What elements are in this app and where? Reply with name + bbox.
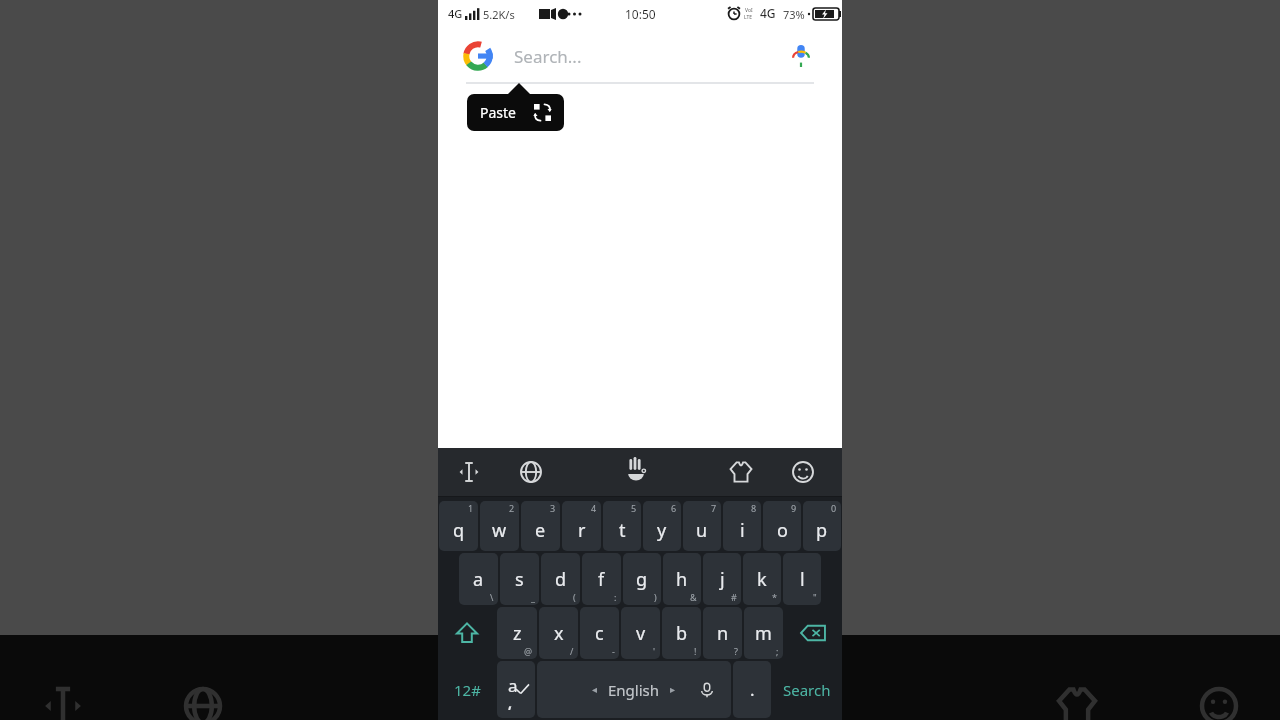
staticText: 3 xyxy=(550,502,556,514)
staticText: . xyxy=(750,678,755,701)
staticText: 1 xyxy=(468,502,474,514)
staticText: h xyxy=(676,567,688,592)
staticText: ! xyxy=(694,645,697,657)
staticText: ) xyxy=(654,591,657,603)
staticText: p xyxy=(816,518,828,543)
staticText: 8 xyxy=(751,502,757,514)
button[interactable]: ◂ xyxy=(537,661,731,718)
button[interactable]: k xyxy=(743,553,781,605)
button[interactable]: Emoji xyxy=(772,448,834,496)
button[interactable]: Voice search xyxy=(781,36,821,76)
staticText: @ xyxy=(524,645,533,657)
button[interactable]: e xyxy=(521,501,560,551)
staticText: : xyxy=(614,591,617,603)
button[interactable]: t xyxy=(603,501,641,551)
button[interactable]: y xyxy=(643,501,681,551)
staticText: y xyxy=(657,518,667,543)
button[interactable]: 12# xyxy=(438,661,496,718)
button[interactable]: c xyxy=(580,607,619,659)
staticText: m xyxy=(755,621,772,646)
button[interactable]: a xyxy=(459,553,498,605)
button[interactable]: Theme xyxy=(710,448,772,496)
staticText: v xyxy=(636,621,646,646)
staticText: 2 xyxy=(509,502,515,514)
staticText: / xyxy=(570,645,574,657)
staticText: ? xyxy=(734,645,738,657)
button[interactable]: q xyxy=(439,501,478,551)
staticText: 5.2K/s xyxy=(483,7,515,22)
staticText: a xyxy=(508,674,518,697)
other: Google xyxy=(464,42,492,70)
button[interactable]: p xyxy=(803,501,841,551)
button[interactable]: d xyxy=(541,553,580,605)
staticText: j xyxy=(720,567,725,592)
button[interactable]: m xyxy=(744,607,783,659)
button[interactable]: Paste xyxy=(467,94,564,131)
staticText: ; xyxy=(776,645,779,657)
staticText: i xyxy=(740,518,745,543)
staticText: 73% xyxy=(783,7,805,22)
button[interactable]: Shift xyxy=(438,607,496,659)
staticText: ' xyxy=(653,645,656,657)
staticText: s xyxy=(515,567,524,592)
button[interactable]: l xyxy=(783,553,821,605)
staticText: & xyxy=(690,591,697,603)
button[interactable]: v xyxy=(621,607,660,659)
button[interactable]: n xyxy=(703,607,742,659)
staticText: 12# xyxy=(454,680,481,700)
button[interactable]: Google xyxy=(438,28,842,84)
button[interactable]: f xyxy=(582,553,621,605)
staticText: k xyxy=(757,567,767,592)
staticText: u xyxy=(696,518,708,543)
staticText: 5 xyxy=(631,502,637,514)
staticText: q xyxy=(453,518,465,543)
staticText: " xyxy=(813,591,817,603)
staticText: e xyxy=(535,518,546,543)
staticText: \ xyxy=(490,591,494,603)
button[interactable]: Symbols xyxy=(497,661,535,718)
staticText: Search... xyxy=(514,45,582,68)
staticText: n xyxy=(717,621,729,646)
other: Voice input xyxy=(699,682,715,698)
button[interactable]: Backspace xyxy=(784,607,842,659)
staticText: 6 xyxy=(671,502,677,514)
staticText: w xyxy=(492,518,507,543)
staticText: 4G xyxy=(448,6,463,21)
button[interactable]: r xyxy=(562,501,601,551)
staticText: 9 xyxy=(791,502,797,514)
staticText: 10:50 xyxy=(625,6,656,22)
button[interactable]: h xyxy=(663,553,701,605)
staticText: ◂ xyxy=(592,684,598,696)
button[interactable]: Handwriting xyxy=(605,448,667,496)
staticText: g xyxy=(636,567,648,592)
button[interactable]: x xyxy=(539,607,578,659)
staticText: 7 xyxy=(711,502,717,514)
button[interactable]: g xyxy=(623,553,661,605)
button[interactable]: w xyxy=(480,501,519,551)
staticText: b xyxy=(676,621,688,646)
staticText: o xyxy=(777,518,788,543)
button[interactable]: . xyxy=(733,661,771,718)
staticText: ▸ xyxy=(670,684,676,696)
button[interactable]: b xyxy=(662,607,701,659)
button[interactable]: i xyxy=(723,501,761,551)
button[interactable]: z xyxy=(497,607,537,659)
staticText: x xyxy=(554,621,564,646)
staticText: t xyxy=(619,518,626,543)
staticText: 0 xyxy=(831,502,837,514)
staticText: d xyxy=(555,567,567,592)
staticText: Search xyxy=(783,680,831,700)
button[interactable]: Search xyxy=(772,661,842,718)
button[interactable]: j xyxy=(703,553,741,605)
button[interactable]: s xyxy=(500,553,539,605)
staticText: c xyxy=(595,621,604,646)
button[interactable]: Language xyxy=(500,448,562,496)
staticText: _ xyxy=(531,591,535,603)
staticText: * xyxy=(772,591,777,603)
staticText: , xyxy=(508,693,512,712)
button[interactable]: o xyxy=(763,501,801,551)
button[interactable]: Text cursor xyxy=(438,448,500,496)
button[interactable]: u xyxy=(683,501,721,551)
staticText: l xyxy=(800,567,805,592)
staticText: a xyxy=(473,567,484,592)
